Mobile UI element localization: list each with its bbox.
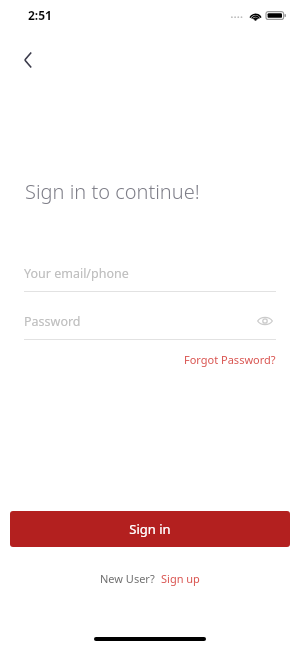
button[interactable]: Password bbox=[24, 309, 276, 333]
staticText: Sign in bbox=[129, 520, 171, 538]
button[interactable]: Your email/phone bbox=[24, 261, 276, 292]
staticText: New User? bbox=[100, 571, 155, 586]
staticText: Sign up bbox=[161, 571, 200, 586]
button[interactable]: Show password bbox=[254, 310, 276, 332]
button[interactable]: Sign up bbox=[161, 571, 200, 586]
staticText: Sign in to continue! bbox=[25, 178, 200, 205]
staticText: Password bbox=[24, 313, 254, 330]
button[interactable]: Forgot Password? bbox=[184, 352, 276, 367]
staticText: Forgot Password? bbox=[184, 352, 276, 367]
staticText: 2:51 bbox=[28, 7, 52, 23]
button[interactable]: Sign in bbox=[10, 511, 290, 547]
button[interactable]: Back bbox=[8, 40, 48, 80]
staticText: Your email/phone bbox=[24, 265, 129, 282]
